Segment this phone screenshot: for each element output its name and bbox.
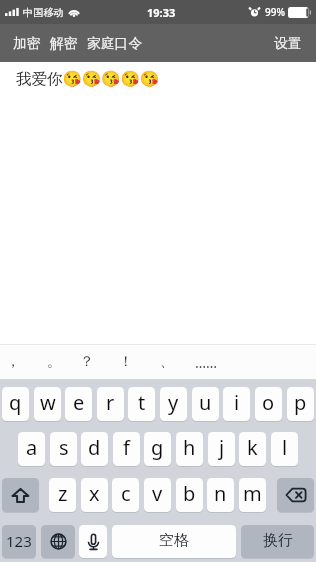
button[interactable]: 、 xyxy=(148,345,186,379)
button[interactable]: z xyxy=(49,478,76,512)
staticText: 。 xyxy=(47,353,61,371)
staticText: ！ xyxy=(119,353,133,371)
button[interactable]: n xyxy=(207,478,234,512)
staticText: 中国移动 xyxy=(23,6,64,19)
button[interactable]: r xyxy=(97,387,124,421)
staticText: a xyxy=(26,434,38,461)
button[interactable]: Change input language xyxy=(41,525,75,558)
button[interactable]: u xyxy=(192,387,219,421)
button[interactable]: Shift xyxy=(2,478,39,512)
button[interactable]: o xyxy=(255,387,282,421)
staticText: x xyxy=(89,480,100,507)
button[interactable]: 空格 xyxy=(112,525,236,558)
button[interactable]: w xyxy=(34,387,61,421)
staticText: j xyxy=(219,434,225,461)
button[interactable]: e xyxy=(65,387,92,421)
button[interactable]: s xyxy=(50,432,77,466)
staticText: m xyxy=(243,480,262,507)
staticText: 解密 xyxy=(50,35,78,52)
staticText: 加密 xyxy=(13,35,41,52)
staticText: v xyxy=(152,480,163,507)
button[interactable]: ？ xyxy=(68,345,106,379)
staticText: 、 xyxy=(160,353,174,371)
button[interactable]: g xyxy=(144,432,171,466)
staticText: 换行 xyxy=(263,531,293,550)
staticText: k xyxy=(247,434,258,461)
staticText: h xyxy=(183,434,196,461)
staticText: y xyxy=(168,389,179,416)
button[interactable]: a xyxy=(18,432,45,466)
button[interactable]: 换行 xyxy=(241,525,314,558)
button[interactable]: f xyxy=(113,432,140,466)
button[interactable]: m xyxy=(239,478,266,512)
button[interactable]: j xyxy=(208,432,235,466)
button[interactable]: 。 xyxy=(35,345,73,379)
button[interactable]: k xyxy=(239,432,266,466)
button[interactable]: ， xyxy=(0,345,32,379)
button[interactable]: p xyxy=(287,387,314,421)
button[interactable]: 设置 xyxy=(260,24,316,62)
button[interactable]: l xyxy=(271,432,298,466)
staticText: b xyxy=(183,480,196,507)
staticText: ？ xyxy=(80,353,94,371)
staticText: s xyxy=(59,434,69,461)
staticText: o xyxy=(262,389,275,416)
button[interactable]: Voice input xyxy=(79,525,107,558)
button[interactable]: i xyxy=(223,387,250,421)
staticText: c xyxy=(121,480,131,507)
button[interactable]: 家庭口令 xyxy=(87,29,143,58)
button[interactable]: q xyxy=(2,387,29,421)
staticText: g xyxy=(151,434,164,461)
staticText: u xyxy=(199,389,212,416)
staticText: ， xyxy=(6,353,20,371)
button[interactable]: 加密 xyxy=(13,29,41,58)
button[interactable]: c xyxy=(112,478,139,512)
staticText: i xyxy=(234,389,240,416)
button[interactable]: x xyxy=(81,478,108,512)
button[interactable]: 123 xyxy=(2,525,36,558)
staticText: e xyxy=(73,389,85,416)
staticText: …… xyxy=(195,353,218,372)
staticText: 空格 xyxy=(159,531,189,550)
staticText: t xyxy=(138,389,146,416)
staticText: 19:33 xyxy=(147,5,176,20)
staticText: 123 xyxy=(6,531,32,551)
button[interactable]: h xyxy=(176,432,203,466)
button[interactable]: …… xyxy=(187,345,225,379)
staticText: 99% xyxy=(265,5,285,19)
staticText: d xyxy=(88,434,101,461)
button[interactable]: v xyxy=(144,478,171,512)
button[interactable]: Backspace xyxy=(277,478,314,512)
button[interactable]: t xyxy=(128,387,155,421)
staticText: p xyxy=(294,389,307,416)
staticText: 设置 xyxy=(274,35,302,52)
staticText: 我爱你😘😘😘😘😘 xyxy=(16,69,159,89)
staticText: w xyxy=(40,389,56,416)
button[interactable]: b xyxy=(176,478,203,512)
staticText: f xyxy=(123,434,130,461)
staticText: z xyxy=(58,480,68,507)
button[interactable]: d xyxy=(81,432,108,466)
staticText: l xyxy=(282,434,288,461)
button[interactable]: y xyxy=(160,387,187,421)
button[interactable]: 解密 xyxy=(50,29,78,58)
staticText: q xyxy=(9,389,22,416)
button[interactable]: ！ xyxy=(107,345,145,379)
staticText: n xyxy=(214,480,227,507)
staticText: 家庭口令 xyxy=(87,35,143,52)
staticText: r xyxy=(106,389,115,416)
